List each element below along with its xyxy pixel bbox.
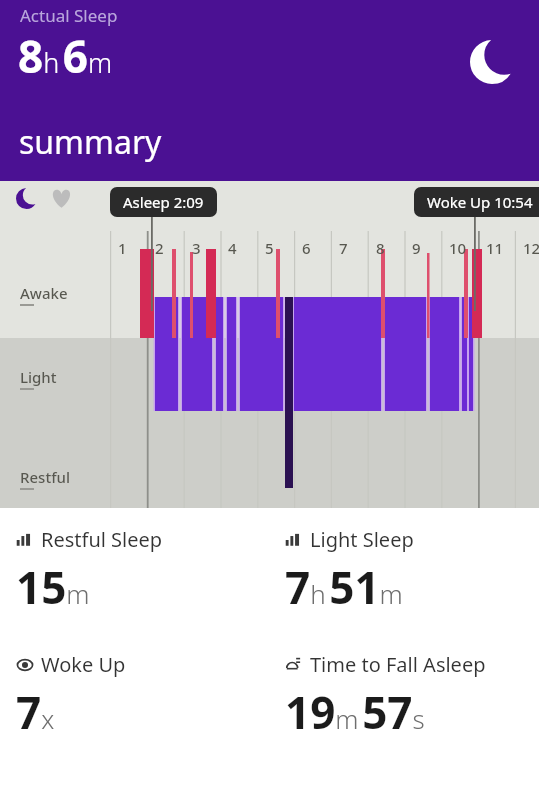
staticText: 7x: [16, 682, 55, 742]
staticText: summary: [19, 120, 162, 164]
staticText: 12: [523, 238, 539, 258]
button[interactable]: Woke Up 10:54: [414, 187, 539, 217]
staticText: 8: [376, 238, 385, 258]
button[interactable]: Heart rate: [50, 187, 73, 210]
staticText: Asleep 2:09: [123, 192, 204, 212]
staticText: Restful: [20, 467, 70, 487]
button[interactable]: Time to Fall Asleep: [269, 633, 539, 742]
button[interactable]: Actual Sleep: [0, 0, 539, 181]
staticText: 11: [486, 238, 504, 258]
button[interactable]: Sleep: [16, 188, 37, 209]
staticText: Woke Up: [41, 651, 126, 678]
button[interactable]: Asleep 2:09: [110, 187, 217, 217]
staticText: 10: [449, 238, 467, 258]
staticText: 15m: [16, 557, 90, 617]
staticText: 7: [339, 238, 348, 258]
staticText: 19m 57s: [285, 682, 425, 742]
staticText: Woke Up 10:54: [427, 192, 533, 212]
staticText: 7h 51m: [285, 557, 403, 617]
staticText: 4: [228, 238, 237, 258]
staticText: 9: [412, 238, 421, 258]
other: Sleep mode: [470, 40, 514, 84]
staticText: 5: [265, 238, 274, 258]
button[interactable]: Light Sleep: [269, 508, 539, 617]
button[interactable]: Restful Sleep: [0, 508, 269, 617]
staticText: Restful Sleep: [41, 526, 163, 553]
staticText: Light Sleep: [310, 526, 414, 553]
staticText: 2: [155, 238, 164, 258]
staticText: Time to Fall Asleep: [310, 651, 486, 678]
button[interactable]: Woke Up: [0, 633, 269, 742]
staticText: 6: [302, 238, 311, 258]
staticText: 1: [118, 238, 127, 258]
staticText: Light: [20, 367, 57, 387]
staticText: Actual Sleep: [20, 4, 118, 27]
staticText: Awake: [20, 283, 68, 303]
staticText: 3: [192, 238, 201, 258]
staticText: 8h 6m: [18, 26, 113, 86]
